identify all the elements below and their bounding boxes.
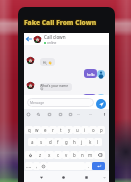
button[interactable]: More (87, 111, 93, 117)
button[interactable]: Back (24, 34, 34, 44)
staticText: online (47, 41, 57, 45)
staticText: d (49, 139, 52, 145)
button[interactable]: g (62, 138, 70, 146)
staticText: Fake Call From Clown (24, 18, 97, 27)
button[interactable]: e (41, 126, 49, 134)
staticText: Fake Call From Clown (24, 17, 97, 26)
staticText: Fake Call From Clown (24, 17, 97, 26)
staticText: n (81, 152, 84, 158)
button[interactable]: Hide keyboard (100, 173, 108, 181)
staticText: i (84, 127, 86, 133)
staticText: o (92, 127, 95, 133)
staticText: Fake Call From Clown (23, 18, 96, 27)
staticText: l (97, 139, 99, 145)
button[interactable]: Mic (101, 111, 107, 117)
button[interactable]: Home (59, 173, 67, 181)
staticText: r (52, 127, 54, 133)
staticText: Fake Call From Clown (23, 19, 96, 28)
button[interactable]: Backspace (94, 151, 105, 159)
button[interactable]: GIF (46, 111, 52, 117)
staticText: Fake Call From Clown (23, 17, 96, 26)
button[interactable]: nancy (83, 94, 96, 103)
button[interactable]: . (85, 162, 92, 170)
button[interactable]: Hi, 👋 (40, 58, 55, 66)
staticText: Fake Call From Clown (24, 18, 97, 27)
button[interactable]: t (57, 126, 65, 134)
button[interactable]: Message (27, 98, 94, 107)
staticText: What's your name 😊 (40, 83, 72, 91)
staticText: t (60, 127, 62, 133)
button[interactable]: i (81, 126, 89, 134)
staticText: j (81, 139, 83, 145)
staticText: Hi, 👋 (43, 60, 53, 64)
button[interactable]: Emoji (40, 162, 47, 170)
button[interactable]: , (33, 162, 40, 170)
button[interactable]: ?123 (25, 162, 33, 170)
button[interactable]: Clipboard (67, 111, 73, 117)
staticText: k (89, 139, 92, 145)
staticText: Fake Call From Clown (24, 18, 97, 27)
staticText: s (40, 139, 43, 145)
button[interactable]: h (70, 138, 78, 146)
button[interactable]: v (62, 151, 70, 159)
staticText: a (31, 139, 34, 145)
button[interactable]: f (54, 138, 62, 146)
button[interactable]: j (78, 138, 86, 146)
button[interactable]: m (86, 151, 94, 159)
staticText: , (36, 163, 38, 169)
staticText: Fake Call From Clown (24, 18, 97, 27)
button[interactable]: hello (84, 69, 97, 78)
button[interactable]: Settings (75, 111, 81, 117)
staticText: Fake Call From Clown (25, 18, 98, 27)
button[interactable]: Sticker (57, 111, 63, 117)
staticText: Fake Call From Clown (24, 18, 97, 27)
staticText: p (100, 127, 103, 133)
button[interactable]: Recents (82, 173, 90, 181)
button[interactable]: l (94, 138, 102, 146)
button[interactable]: a (28, 138, 37, 146)
staticText: f (57, 139, 59, 145)
staticText: . (88, 163, 90, 169)
staticText: hello (87, 72, 95, 76)
button[interactable]: Voice typing (25, 111, 31, 117)
staticText: q (28, 127, 31, 133)
button[interactable]: r (49, 126, 57, 134)
staticText: Fake Call From Clown (24, 18, 97, 27)
staticText: Fake Call From Clown (25, 17, 98, 26)
button[interactable]: Shift (25, 151, 36, 159)
button[interactable]: d (46, 138, 54, 146)
staticText: Fake Call From Clown (23, 18, 96, 27)
button[interactable]: c (54, 151, 62, 159)
button[interactable]: y (65, 126, 73, 134)
button[interactable]: s (37, 138, 46, 146)
button[interactable]: w (33, 126, 41, 134)
button[interactable]: Send (96, 99, 106, 109)
staticText: Fake Call From Clown (25, 18, 98, 27)
staticText: y (68, 127, 71, 133)
staticText: b (73, 152, 76, 158)
button[interactable]: b (70, 151, 78, 159)
staticText: g (65, 139, 68, 145)
button[interactable]: n (78, 151, 86, 159)
button[interactable]: What's your name 😊 (40, 83, 72, 91)
button[interactable]: x (45, 151, 54, 159)
button[interactable]: z (36, 151, 45, 159)
button[interactable]: Enter (92, 162, 105, 170)
staticText: Fake Call From Clown (24, 17, 97, 26)
button[interactable]: o (89, 126, 97, 134)
button[interactable]: Search (35, 111, 41, 117)
staticText: nancy (85, 97, 95, 101)
button[interactable]: p (97, 126, 105, 134)
staticText: h (73, 139, 76, 145)
button[interactable]: k (86, 138, 94, 146)
staticText: w (35, 127, 39, 133)
button[interactable]: q (25, 126, 33, 134)
staticText: Fake Call From Clown (23, 18, 96, 27)
staticText: Fake Call From Clown (24, 19, 97, 28)
staticText: v (65, 152, 68, 158)
button[interactable]: Back (37, 173, 45, 181)
button[interactable]: u (73, 126, 81, 134)
staticText: m (88, 152, 93, 158)
staticText: Fake Call From Clown (24, 18, 97, 27)
